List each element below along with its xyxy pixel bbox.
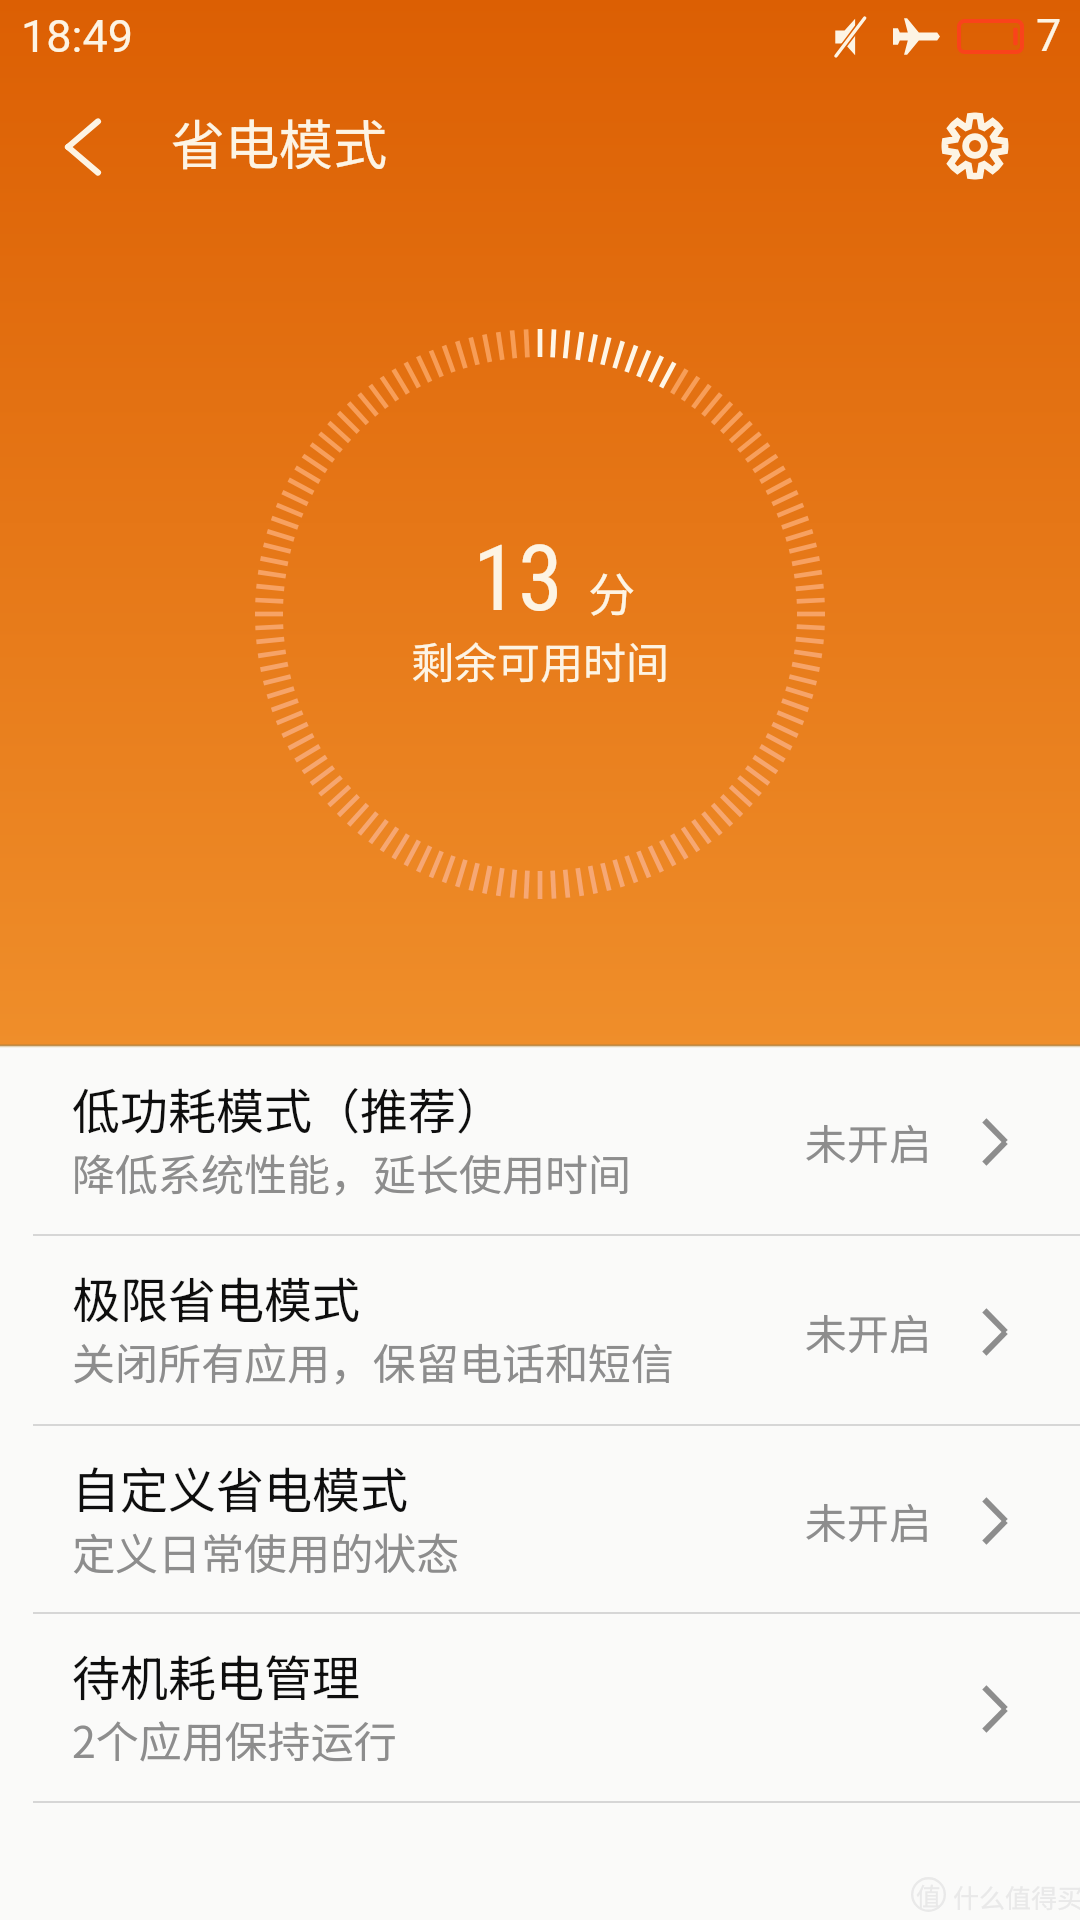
button[interactable]: 低功耗模式（推荐） — [0, 1047, 1080, 1236]
staticText: 自定义省电模式 — [72, 1452, 409, 1522]
staticText: 关闭所有应用，保留电话和短信 — [72, 1330, 674, 1392]
staticText: 待机耗电管理 — [72, 1640, 361, 1710]
staticText: 未开启 — [805, 1490, 932, 1551]
staticText: 剩余可用时间 — [411, 629, 669, 691]
staticText: 未开启 — [805, 1301, 932, 1362]
staticText: 降低系统性能，延长使用时间 — [72, 1141, 631, 1203]
button[interactable]: 自定义省电模式 — [0, 1426, 1080, 1614]
staticText: 2个应用保持运行 — [72, 1708, 397, 1770]
button[interactable]: 极限省电模式 — [0, 1236, 1080, 1426]
staticText: 未开启 — [805, 1111, 932, 1172]
staticText: 低功耗模式（推荐） — [72, 1073, 505, 1143]
button[interactable]: Back — [35, 99, 131, 195]
staticText: 13 — [473, 526, 563, 633]
button[interactable]: 待机耗电管理 — [0, 1614, 1080, 1803]
staticText: 极限省电模式 — [72, 1262, 361, 1332]
staticText: 7 — [1036, 9, 1062, 62]
staticText: 18:49 — [21, 10, 134, 63]
staticText: 分 — [588, 557, 635, 625]
staticText: 定义日常使用的状态 — [72, 1520, 459, 1582]
staticText: 省电模式 — [171, 102, 387, 180]
button[interactable]: Settings — [927, 98, 1023, 194]
staticText: 值 — [916, 1877, 942, 1912]
staticText: 什么值得买 — [953, 1878, 1080, 1916]
